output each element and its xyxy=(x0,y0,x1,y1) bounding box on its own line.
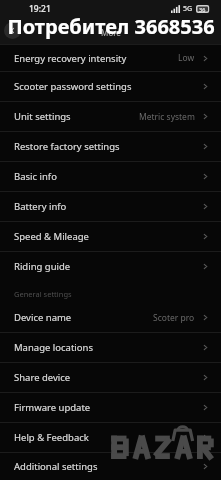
button[interactable]: Help & Feedback xyxy=(0,423,221,452)
staticText: Scoter pro xyxy=(153,312,195,324)
button[interactable]: Restore factory settings xyxy=(0,132,221,161)
staticText: More xyxy=(101,27,121,38)
staticText: Scooter password settings xyxy=(14,80,132,93)
staticText: 19:21 xyxy=(29,3,51,15)
staticText: Help & Feedback xyxy=(14,431,89,444)
staticText: 5G xyxy=(183,4,193,14)
button[interactable]: Unit settings xyxy=(0,102,221,131)
button[interactable]: Speed & Mileage xyxy=(0,222,221,251)
staticText: General settings xyxy=(14,289,72,299)
button[interactable]: Basic info xyxy=(0,162,221,191)
button[interactable]: Share device xyxy=(0,363,221,392)
staticText: Speed & Mileage xyxy=(14,230,89,243)
staticText: Metric system xyxy=(139,111,195,123)
staticText: Share device xyxy=(14,371,71,384)
staticText: Low xyxy=(178,52,195,64)
button[interactable]: Firmware update xyxy=(0,393,221,422)
button[interactable]: Energy recovery intensity xyxy=(0,45,221,71)
button[interactable]: Device name xyxy=(0,303,221,332)
button[interactable]: Riding guide xyxy=(0,252,221,281)
button[interactable]: Back xyxy=(4,22,21,39)
staticText: Unit settings xyxy=(14,110,71,123)
button[interactable]: Manage locations xyxy=(0,333,221,362)
staticText: Energy recovery intensity xyxy=(14,52,127,65)
staticText: Basic info xyxy=(14,170,57,183)
staticText: 36 xyxy=(199,6,206,13)
staticText: Restore factory settings xyxy=(14,140,120,153)
staticText: Additional settings xyxy=(14,460,98,473)
staticText: Firmware update xyxy=(14,401,91,414)
staticText: Потребител 3668536 xyxy=(7,13,215,40)
staticText: Manage locations xyxy=(14,341,93,354)
button[interactable]: Scooter password settings xyxy=(0,72,221,101)
staticText: Riding guide xyxy=(14,260,71,273)
button[interactable]: Battery info xyxy=(0,192,221,221)
staticText: Device name xyxy=(14,311,72,324)
staticText: Battery info xyxy=(14,200,67,213)
button[interactable]: Additional settings xyxy=(0,453,221,480)
